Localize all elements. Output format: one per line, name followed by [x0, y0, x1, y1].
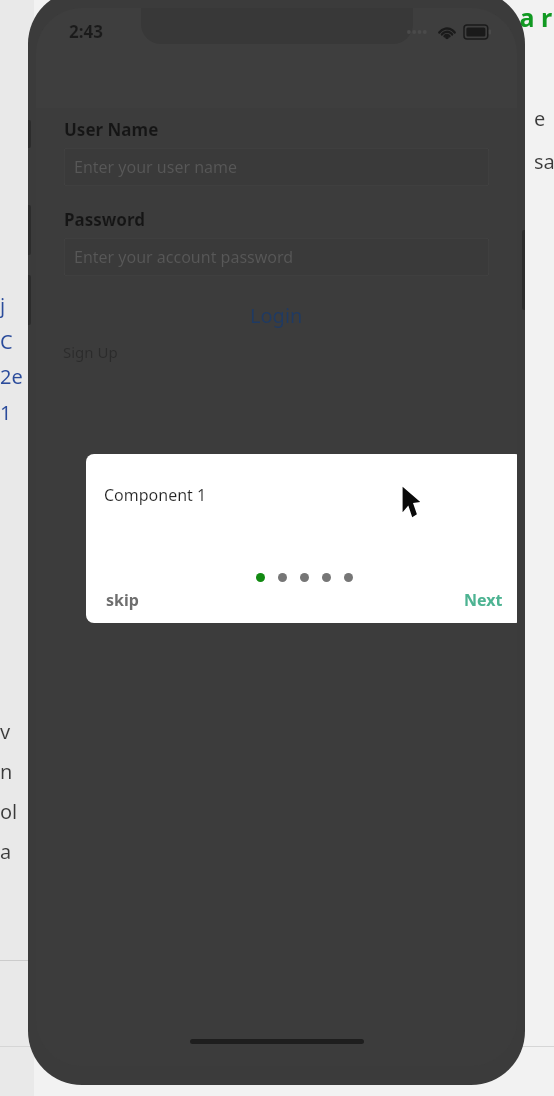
button[interactable]: Sign Up [63, 342, 118, 362]
staticText: 2:43 [69, 20, 103, 43]
staticText: Next [464, 589, 503, 611]
staticText: v [0, 718, 11, 745]
button[interactable]: Enter your account password [64, 238, 489, 276]
staticText: 2e [0, 363, 23, 390]
button[interactable]: skip [106, 589, 139, 611]
staticText: e a r [498, 0, 553, 34]
button[interactable]: Login [36, 296, 517, 334]
staticText: Component 1 [104, 484, 207, 506]
staticText: skip [106, 589, 139, 611]
button[interactable]: Enter your user name [64, 148, 489, 186]
staticText: j [0, 292, 6, 319]
staticText: n [0, 758, 13, 785]
staticText: Login [250, 302, 303, 329]
staticText: Enter your account password [74, 246, 294, 268]
staticText: a [0, 838, 12, 865]
staticText: 1 [0, 399, 12, 426]
staticText: User Name [64, 118, 159, 141]
staticText: C [0, 328, 13, 355]
staticText: ol [0, 798, 18, 825]
button[interactable]: Next [464, 589, 503, 611]
staticText: Enter your user name [74, 156, 238, 178]
staticText: sa [534, 148, 554, 175]
staticText: e [534, 105, 546, 132]
staticText: Password [64, 208, 145, 231]
staticText: Sign Up [63, 342, 118, 362]
